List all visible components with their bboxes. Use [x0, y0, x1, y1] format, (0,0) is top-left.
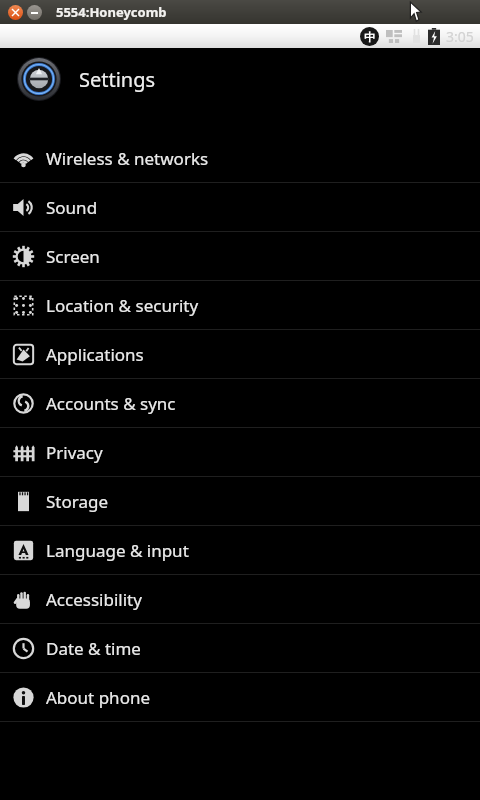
button[interactable]: Location & security [0, 281, 480, 329]
staticText: Accessibility [46, 588, 142, 611]
staticText: 3:05 [446, 27, 474, 46]
button[interactable]: Wireless & networks [0, 134, 480, 182]
button[interactable]: Sound [0, 183, 480, 231]
staticText: Sound [46, 196, 98, 219]
staticText: Accounts & sync [46, 392, 176, 415]
staticText: Language & input [46, 539, 189, 562]
button[interactable]: Accounts & sync [0, 379, 480, 427]
button[interactable]: Minimize [27, 5, 42, 20]
button[interactable]: About phone [0, 673, 480, 721]
staticText: Privacy [46, 441, 103, 464]
button[interactable]: Screen [0, 232, 480, 280]
staticText: Date & time [46, 637, 141, 660]
staticText: Wireless & networks [46, 147, 209, 170]
button[interactable]: Storage [0, 477, 480, 525]
staticText: About phone [46, 686, 151, 709]
button[interactable]: Date & time [0, 624, 480, 672]
button[interactable]: Privacy [0, 428, 480, 476]
button[interactable]: Applications [0, 330, 480, 378]
staticText: Settings [79, 66, 156, 93]
button[interactable]: Language & input [0, 526, 480, 574]
button[interactable]: Accessibility [0, 575, 480, 623]
button[interactable]: Close [8, 5, 23, 20]
staticText: Applications [46, 343, 144, 366]
button[interactable]: Settings [0, 48, 480, 110]
staticText: 5554:Honeycomb [56, 3, 167, 21]
staticText: Storage [46, 490, 109, 513]
staticText: 中 [364, 30, 375, 44]
staticText: Screen [46, 245, 100, 268]
staticText: Location & security [46, 294, 199, 317]
